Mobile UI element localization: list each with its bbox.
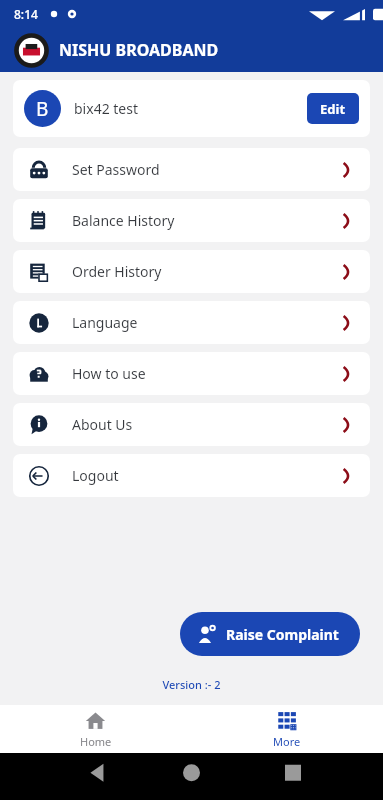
staticText: Raise Complaint — [226, 625, 339, 644]
staticText: Balance History — [72, 211, 175, 230]
button[interactable]: More — [191, 705, 383, 753]
staticText: Logout — [72, 466, 119, 485]
staticText: About Us — [72, 415, 133, 434]
button[interactable]: Raise Complaint — [180, 612, 360, 656]
button[interactable]: Order History — [13, 250, 370, 293]
button[interactable]: How to use — [13, 352, 370, 395]
staticText: NISHU BROADBAND — [59, 39, 219, 61]
button[interactable]: B — [13, 80, 370, 137]
button[interactable]: About Us — [13, 403, 370, 446]
button[interactable]: Language — [13, 301, 370, 344]
staticText: bix42 test — [74, 99, 138, 118]
staticText: Home — [80, 734, 112, 749]
staticText: 8:14 — [14, 6, 38, 22]
staticText: Order History — [72, 262, 162, 281]
staticText: B — [36, 96, 49, 122]
button[interactable]: Edit — [307, 93, 359, 124]
button[interactable]: Balance History — [13, 199, 370, 242]
staticText: How to use — [72, 364, 146, 383]
staticText: Language — [72, 313, 138, 332]
staticText: Edit — [320, 100, 346, 118]
button[interactable]: Set Password — [13, 148, 370, 191]
staticText: More — [273, 734, 301, 749]
button[interactable]: Home — [0, 705, 191, 753]
button[interactable]: Logout — [13, 454, 370, 497]
staticText: Set Password — [72, 160, 160, 179]
staticText: Version :- 2 — [0, 677, 383, 692]
